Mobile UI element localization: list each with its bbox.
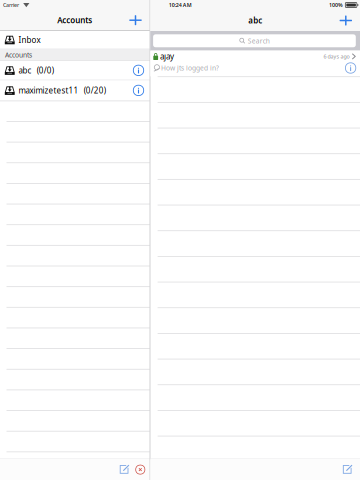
staticText: (0/0) <box>37 65 54 76</box>
button[interactable]: ajay <box>150 51 360 76</box>
staticText: (0/20) <box>84 85 106 96</box>
button[interactable]: Inbox <box>0 31 150 49</box>
button[interactable]: maximizetest11 <box>0 80 150 101</box>
staticText: 6 days ago <box>324 53 350 60</box>
staticText: abc <box>248 15 262 26</box>
staticText: Inbox <box>18 34 40 45</box>
staticText: 10:24 AM <box>169 1 192 9</box>
staticText: How jts logged in? <box>161 64 219 72</box>
button[interactable]: Compose <box>116 460 132 479</box>
staticText: maximizetest11 <box>18 85 78 96</box>
button[interactable]: abc <box>0 61 150 80</box>
button[interactable]: Search <box>150 31 360 51</box>
button[interactable]: New conversation <box>337 12 355 29</box>
staticText: Carrier <box>3 1 19 9</box>
staticText: Accounts <box>5 50 32 59</box>
staticText: Accounts <box>57 15 92 25</box>
button[interactable]: Add account <box>126 12 145 29</box>
staticText: ajay <box>160 51 174 62</box>
staticText: abc <box>18 65 31 76</box>
button[interactable]: Delete <box>132 461 148 478</box>
button[interactable]: Compose <box>339 460 355 479</box>
staticText: 100% <box>329 1 343 9</box>
staticText: Search <box>248 36 270 45</box>
